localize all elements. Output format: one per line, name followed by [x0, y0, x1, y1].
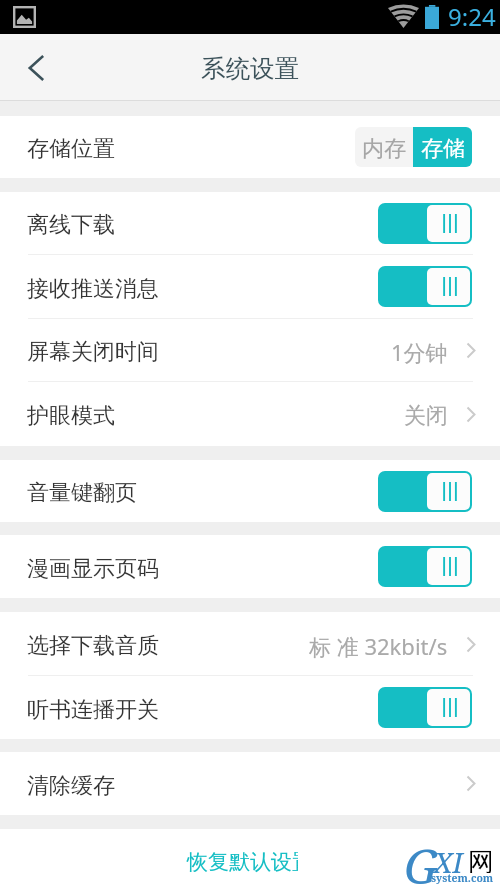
staticText: 恢复默认设置 — [187, 849, 313, 875]
staticText: 选择下载音质 — [27, 632, 159, 660]
button[interactable]: 护眼模式 — [0, 382, 500, 446]
button[interactable]: 漫画显示页码 — [0, 535, 500, 598]
button[interactable]: Toggle — [378, 203, 472, 244]
staticText: G — [404, 833, 439, 888]
button[interactable]: 屏幕关闭时间 — [0, 319, 500, 381]
button[interactable]: 清除缓存 — [0, 752, 500, 815]
staticText: 离线下载 — [27, 211, 115, 239]
staticText: 1分钟 — [391, 337, 448, 367]
button[interactable]: 听书连播开关 — [0, 676, 500, 739]
button[interactable]: 接收推送消息 — [0, 255, 500, 318]
staticText: 音量键翻页 — [27, 479, 137, 507]
button[interactable]: 恢复默认设置 — [173, 843, 327, 881]
staticText: 漫画显示页码 — [27, 555, 159, 583]
staticText: 9:24 — [448, 0, 496, 33]
staticText: 内存 — [362, 135, 406, 163]
staticText: 系统设置 — [201, 53, 299, 84]
staticText: 接收推送消息 — [27, 275, 159, 303]
button[interactable]: 选择下载音质 — [0, 612, 500, 675]
button[interactable]: Back — [12, 44, 60, 92]
staticText: system.com — [431, 871, 494, 885]
staticText: 存储 — [421, 135, 465, 163]
staticText: 屏幕关闭时间 — [27, 338, 159, 366]
staticText: XI — [434, 843, 463, 881]
staticText: 关闭 — [404, 402, 448, 430]
button[interactable]: 内存 — [355, 127, 472, 167]
button[interactable]: Toggle — [378, 471, 472, 512]
button[interactable]: Toggle — [378, 546, 472, 587]
staticText: 存储位置 — [27, 135, 115, 163]
button[interactable]: 存储位置 — [0, 116, 500, 178]
staticText: 标 准 32kbit/s — [309, 631, 448, 661]
staticText: 护眼模式 — [27, 402, 115, 430]
staticText: 听书连播开关 — [27, 696, 159, 724]
button[interactable]: Toggle — [378, 687, 472, 728]
button[interactable]: Toggle — [378, 266, 472, 307]
staticText: 清除缓存 — [27, 772, 115, 800]
button[interactable]: 音量键翻页 — [0, 460, 500, 522]
button[interactable]: 离线下载 — [0, 192, 500, 254]
staticText: 网 — [468, 846, 492, 873]
